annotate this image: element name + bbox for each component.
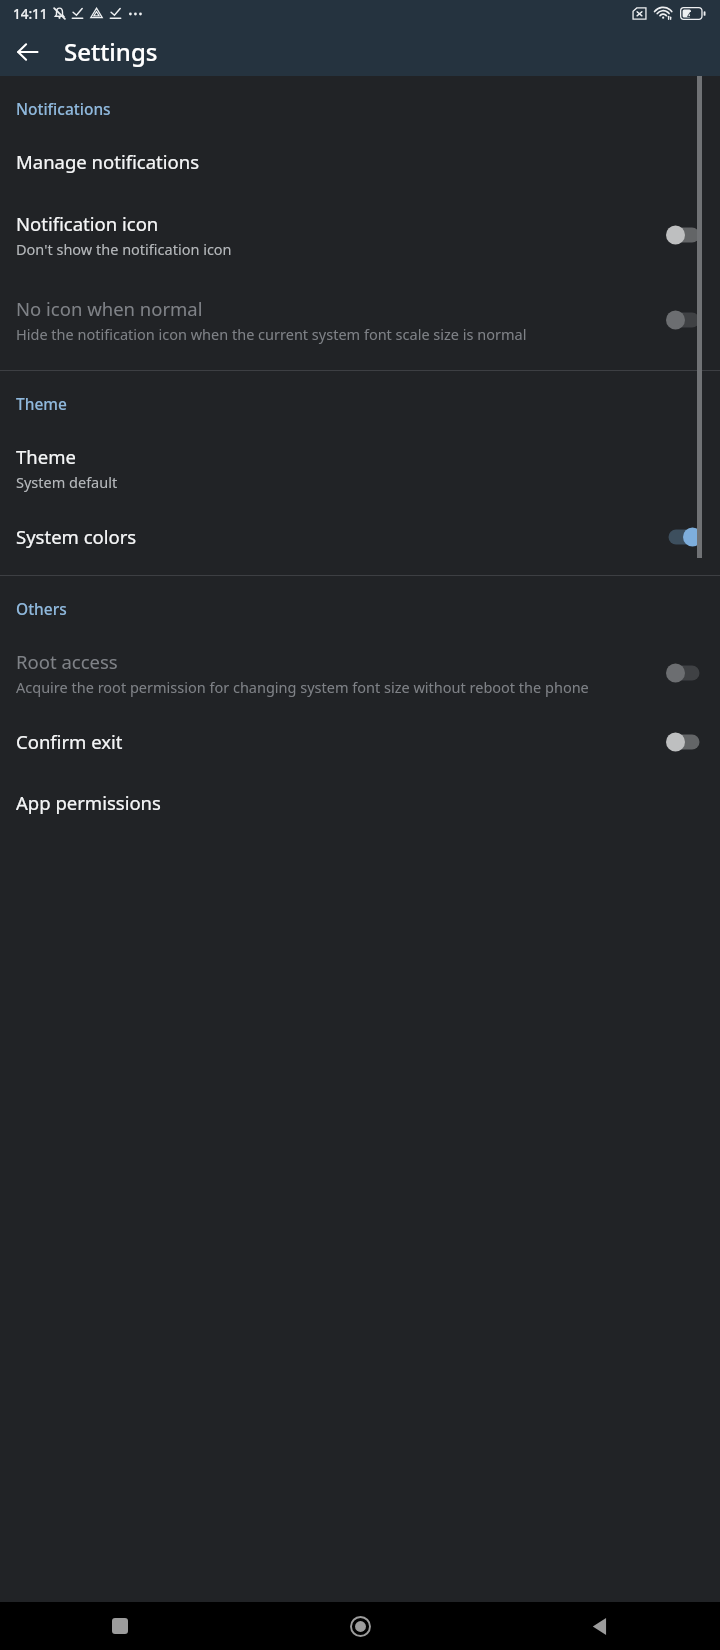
staticText: Theme [16,444,76,469]
staticText: Root access [16,649,118,674]
staticText: Notification icon [16,211,159,236]
staticText: Confirm exit [16,729,123,754]
staticText: 49 [687,8,698,20]
staticText: Hide the notification icon when the curr… [16,324,527,344]
button[interactable]: App permissions [0,790,720,815]
button[interactable]: Recent apps [0,1602,240,1650]
staticText: Manage notifications [16,149,200,174]
staticText: App permissions [16,790,161,815]
button[interactable]: Switch off [665,308,703,332]
button[interactable]: Back [480,1602,720,1650]
staticText: System default [16,472,118,492]
button[interactable]: Switch on [665,525,703,549]
button[interactable]: No icon when normal [0,296,720,344]
staticText: Don't show the notification icon [16,239,232,259]
button[interactable]: Switch off [665,730,703,754]
button[interactable]: Switch off [665,661,703,685]
staticText: Settings [64,35,158,68]
button[interactable]: Notification icon [0,211,720,259]
staticText: No icon when normal [16,296,203,321]
staticText: Others [16,598,67,619]
button[interactable]: Root access [0,649,720,697]
button[interactable]: Navigate up [4,28,52,76]
button[interactable]: System colors [0,524,720,549]
button[interactable]: Manage notifications [0,149,720,174]
staticText: Notifications [16,98,111,119]
staticText: Acquire the root permission for changing… [16,677,589,697]
staticText: System colors [16,524,137,549]
button[interactable]: Home [240,1602,480,1650]
staticText: Theme [16,393,67,414]
staticText: 14:11 [13,5,48,23]
button[interactable]: Theme [0,444,720,492]
button[interactable]: Switch off [665,223,703,247]
button[interactable]: Confirm exit [0,729,720,754]
